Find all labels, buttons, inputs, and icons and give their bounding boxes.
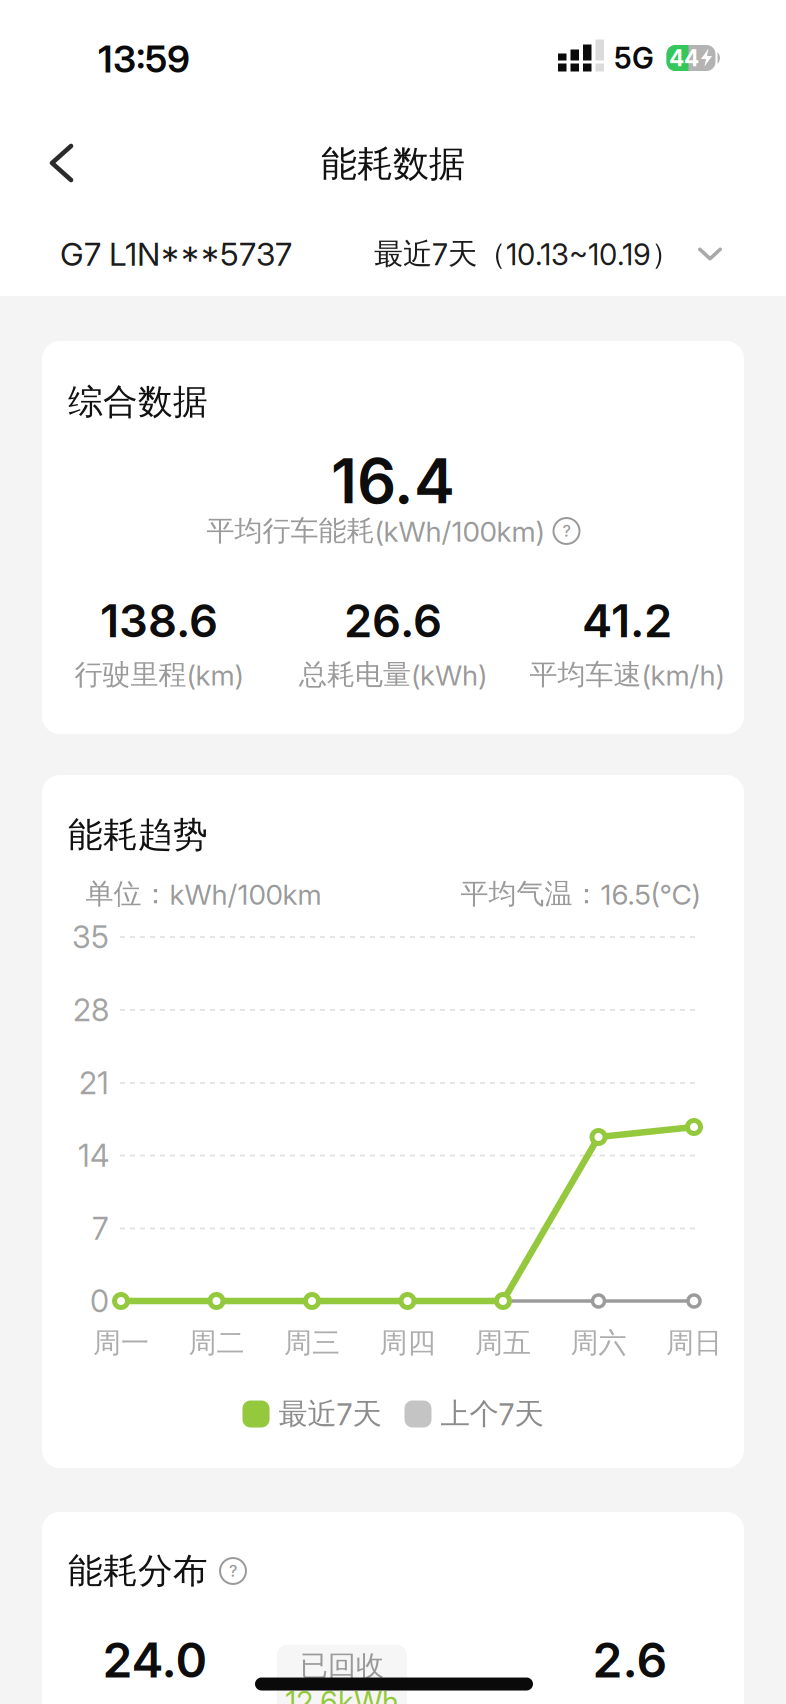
staticText: 14	[78, 1137, 109, 1174]
staticText: 行驶里程(km)	[74, 657, 243, 692]
button[interactable]: About average consumption	[553, 518, 579, 544]
staticText: 总耗电量(kWh)	[299, 657, 487, 692]
button[interactable]: 最近7天（10.13~10.19）	[162, 236, 722, 272]
staticText: 2.6	[592, 1632, 667, 1688]
staticText: 能耗数据	[321, 142, 465, 186]
staticText: 平均行车能耗(kWh/100km)	[206, 514, 544, 548]
staticText: 已回收	[300, 1649, 384, 1683]
button[interactable]: About energy distribution	[220, 1558, 246, 1584]
staticText: 28	[73, 992, 109, 1028]
staticText: 24.0	[102, 1632, 207, 1688]
staticText: 周四	[379, 1326, 435, 1360]
staticText: 35	[72, 919, 109, 955]
staticText: 周日	[666, 1326, 722, 1360]
staticText: 13:59	[98, 37, 190, 81]
staticText: 周六	[570, 1326, 626, 1360]
staticText: ?	[562, 522, 570, 540]
staticText: 综合数据	[68, 381, 208, 423]
button[interactable]: Back	[40, 141, 84, 185]
staticText: 周三	[284, 1326, 340, 1360]
staticText: 周一	[93, 1326, 149, 1360]
staticText: 12.6kWh	[285, 1685, 399, 1704]
staticText: 平均车速(km/h)	[529, 657, 724, 692]
staticText: 最近7天（10.13~10.19）	[374, 236, 680, 272]
staticText: 周五	[475, 1326, 531, 1360]
staticText: 周二	[188, 1326, 244, 1360]
staticText: 单位：kWh/100km	[85, 877, 321, 911]
staticText: 能耗趋势	[68, 814, 208, 856]
staticText: ?	[229, 1562, 237, 1580]
staticText: 16.4	[331, 445, 455, 517]
staticText: 41.2	[582, 594, 672, 648]
staticText: 上个7天	[440, 1396, 543, 1432]
staticText: 44	[669, 45, 699, 71]
staticText: 26.6	[344, 594, 442, 648]
staticText: 138.6	[100, 594, 218, 648]
staticText: 平均气温：16.5(°C)	[460, 877, 700, 911]
staticText: 0	[90, 1283, 109, 1319]
staticText: 能耗分布	[68, 1550, 208, 1592]
staticText: 7	[92, 1210, 109, 1247]
staticText: G7 L1N***5737	[60, 235, 292, 273]
staticText: 最近7天	[278, 1396, 381, 1432]
staticText: 5G	[614, 41, 654, 75]
staticText: 21	[79, 1065, 109, 1101]
